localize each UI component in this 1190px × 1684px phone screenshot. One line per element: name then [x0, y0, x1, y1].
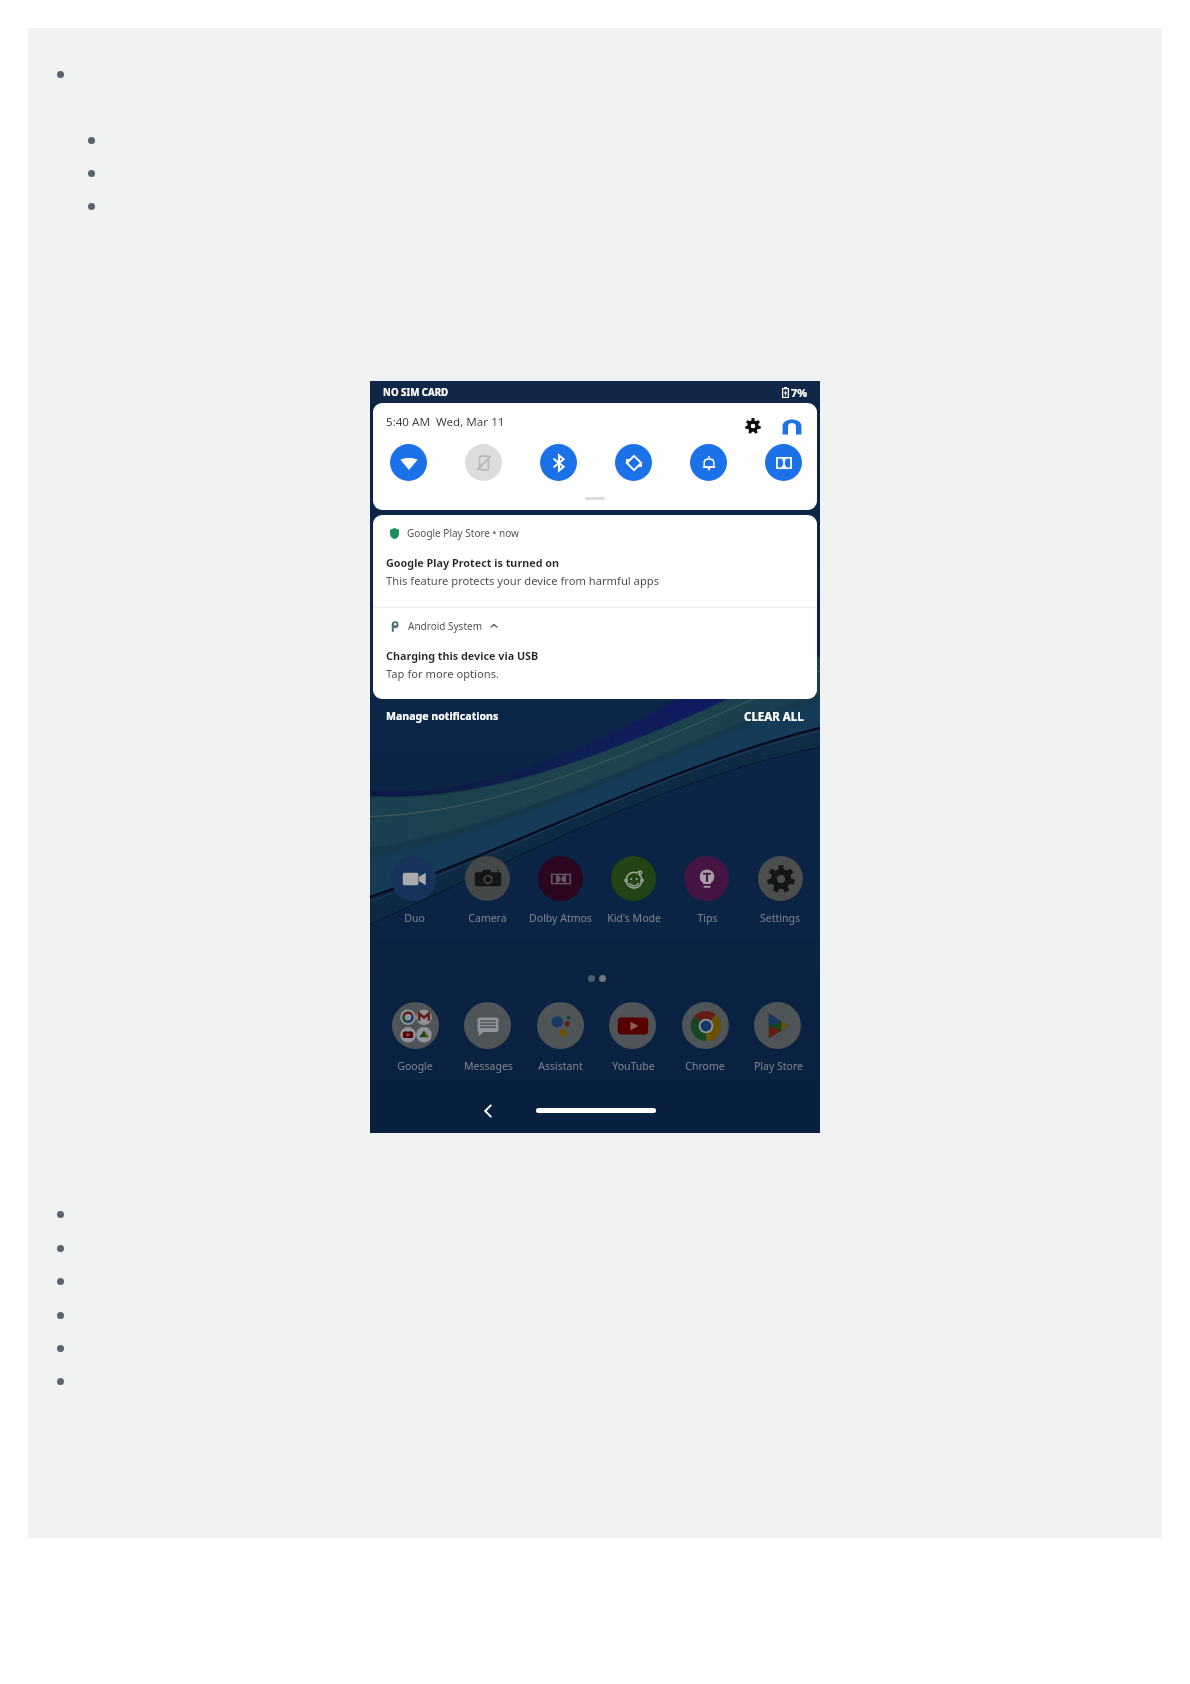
- staticText: Google Play Store • now: [407, 526, 519, 540]
- staticText: Camera: [468, 911, 507, 925]
- button[interactable]: Back: [478, 1101, 498, 1121]
- button[interactable]: Dolby Atmos: [538, 856, 583, 901]
- staticText: Tips: [697, 911, 718, 925]
- button[interactable]: Duo: [391, 856, 436, 901]
- staticText: Android System: [408, 619, 483, 633]
- button[interactable]: Chrome: [682, 1002, 729, 1049]
- staticText: Google: [397, 1059, 433, 1073]
- button[interactable]: Play Store: [738, 1059, 818, 1073]
- staticText: Messages: [464, 1059, 513, 1073]
- staticText: Manage notifications: [386, 709, 499, 723]
- staticText: YouTube: [612, 1059, 655, 1073]
- button[interactable]: Duo: [374, 911, 454, 925]
- staticText: Kid's Mode: [607, 911, 661, 925]
- button[interactable]: Camera: [447, 911, 527, 925]
- staticText: Tap for more options.: [386, 666, 499, 681]
- button[interactable]: YouTube: [609, 1002, 656, 1049]
- button[interactable]: Dolby Atmos: [520, 911, 600, 925]
- button[interactable]: Settings: [740, 911, 820, 925]
- staticText: This feature protects your device from h…: [386, 573, 660, 588]
- staticText: NO SIM CARD: [383, 386, 449, 399]
- button[interactable]: Notifications: [690, 444, 727, 481]
- button[interactable]: Google: [375, 1059, 455, 1073]
- button[interactable]: Auto rotate: [615, 444, 652, 481]
- staticText: 5:40 AM Wed, Mar 11: [386, 414, 505, 430]
- button[interactable]: User account: [779, 413, 805, 439]
- button[interactable]: YouTube: [593, 1059, 673, 1073]
- staticText: Google Play Protect is turned on: [386, 555, 560, 570]
- button[interactable]: Tips: [667, 911, 747, 925]
- button[interactable]: Assistant: [520, 1059, 600, 1073]
- button[interactable]: Messages: [448, 1059, 528, 1073]
- staticText: Duo: [404, 911, 425, 925]
- button[interactable]: Google: [392, 1002, 439, 1049]
- button[interactable]: Chrome: [665, 1059, 745, 1073]
- button[interactable]: Kid's Mode: [611, 856, 656, 901]
- staticText: Dolby Atmos: [529, 911, 592, 925]
- staticText: Chrome: [685, 1059, 725, 1073]
- button[interactable]: Mute: [465, 444, 502, 481]
- button[interactable]: Dolby Atmos: [765, 444, 802, 481]
- staticText: Play Store: [754, 1059, 803, 1073]
- button[interactable]: Tips: [684, 856, 729, 901]
- button[interactable]: Assistant: [537, 1002, 584, 1049]
- staticText: Charging this device via USB: [386, 648, 539, 663]
- button[interactable]: Play Store: [754, 1002, 801, 1049]
- staticText: 7%: [791, 385, 808, 400]
- staticText: Settings: [760, 911, 800, 925]
- button[interactable]: Camera: [465, 856, 510, 901]
- button[interactable]: Settings: [758, 856, 803, 901]
- button[interactable]: Messages: [464, 1002, 511, 1049]
- button[interactable]: Bluetooth: [540, 444, 577, 481]
- button[interactable]: Kid's Mode: [594, 911, 674, 925]
- button[interactable]: CLEAR ALL: [744, 709, 804, 725]
- staticText: CLEAR ALL: [744, 709, 804, 725]
- button[interactable]: Manage notifications: [386, 709, 499, 723]
- button[interactable]: Wi-Fi: [390, 444, 427, 481]
- button[interactable]: Settings: [741, 414, 765, 438]
- staticText: Assistant: [538, 1059, 583, 1073]
